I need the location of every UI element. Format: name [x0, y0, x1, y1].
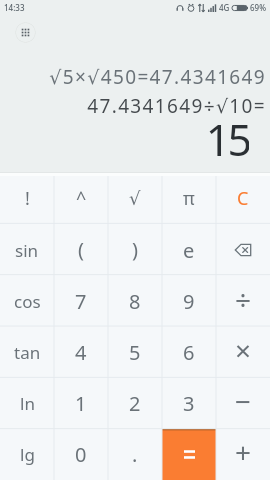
- staticText: ln: [20, 392, 35, 415]
- button[interactable]: lg: [0, 429, 54, 480]
- staticText: 14:33: [4, 2, 25, 13]
- staticText: C: [237, 186, 249, 211]
- staticText: e: [183, 237, 195, 264]
- other: Delete: [234, 243, 252, 257]
- staticText: 3: [183, 390, 195, 417]
- button[interactable]: +: [216, 429, 270, 480]
- button[interactable]: √: [108, 172, 162, 224]
- staticText: ÷: [235, 280, 252, 318]
- staticText: √5×√450=47.4341649: [49, 64, 266, 86]
- button[interactable]: ^: [54, 172, 108, 224]
- staticText: ): [132, 236, 138, 263]
- button[interactable]: 6: [162, 327, 216, 378]
- staticText: cos: [14, 290, 41, 313]
- staticText: 8: [129, 288, 141, 315]
- button[interactable]: 0: [54, 429, 108, 480]
- staticText: .: [132, 441, 138, 468]
- button[interactable]: (: [54, 224, 108, 276]
- staticText: !: [25, 186, 30, 211]
- button[interactable]: ln: [0, 378, 54, 429]
- button[interactable]: [162, 429, 216, 480]
- button[interactable]: π: [162, 172, 216, 224]
- staticText: 69%: [250, 2, 266, 13]
- button[interactable]: 9: [162, 276, 216, 327]
- staticText: 15: [205, 110, 249, 156]
- button[interactable]: 2: [108, 378, 162, 429]
- staticText: (: [78, 236, 84, 263]
- staticText: 5: [129, 339, 141, 366]
- button[interactable]: e: [162, 224, 216, 276]
- button[interactable]: 1: [54, 378, 108, 429]
- staticText: π: [183, 186, 195, 211]
- staticText: sin: [15, 239, 39, 262]
- button[interactable]: 7: [54, 276, 108, 327]
- staticText: 2: [129, 390, 141, 417]
- button[interactable]: Scientific keypad: [15, 22, 36, 43]
- button[interactable]: 8: [108, 276, 162, 327]
- button[interactable]: cos: [0, 276, 54, 327]
- staticText: 7: [75, 288, 87, 315]
- staticText: 1: [75, 390, 87, 417]
- staticText: ^: [76, 186, 87, 211]
- staticText: ×: [235, 331, 252, 369]
- button[interactable]: !: [0, 172, 54, 224]
- staticText: √: [129, 188, 141, 209]
- button[interactable]: sin: [0, 224, 54, 276]
- staticText: tan: [14, 341, 41, 364]
- button[interactable]: 5: [108, 327, 162, 378]
- staticText: +: [235, 433, 252, 471]
- button[interactable]: .: [108, 429, 162, 480]
- staticText: 6: [183, 339, 195, 366]
- staticText: 47.4341649÷√10=: [87, 93, 266, 115]
- button[interactable]: C: [216, 172, 270, 224]
- button[interactable]: 3: [162, 378, 216, 429]
- button[interactable]: ÷: [216, 276, 270, 327]
- button[interactable]: Delete: [216, 224, 270, 276]
- button[interactable]: tan: [0, 327, 54, 378]
- button[interactable]: −: [216, 378, 270, 429]
- staticText: 4: [75, 339, 87, 366]
- staticText: 9: [183, 288, 195, 315]
- staticText: 4G: [219, 2, 230, 13]
- button[interactable]: ×: [216, 327, 270, 378]
- staticText: −: [235, 382, 252, 420]
- staticText: lg: [20, 443, 35, 466]
- button[interactable]: 4: [54, 327, 108, 378]
- button[interactable]: ): [108, 224, 162, 276]
- staticText: 0: [75, 441, 87, 468]
